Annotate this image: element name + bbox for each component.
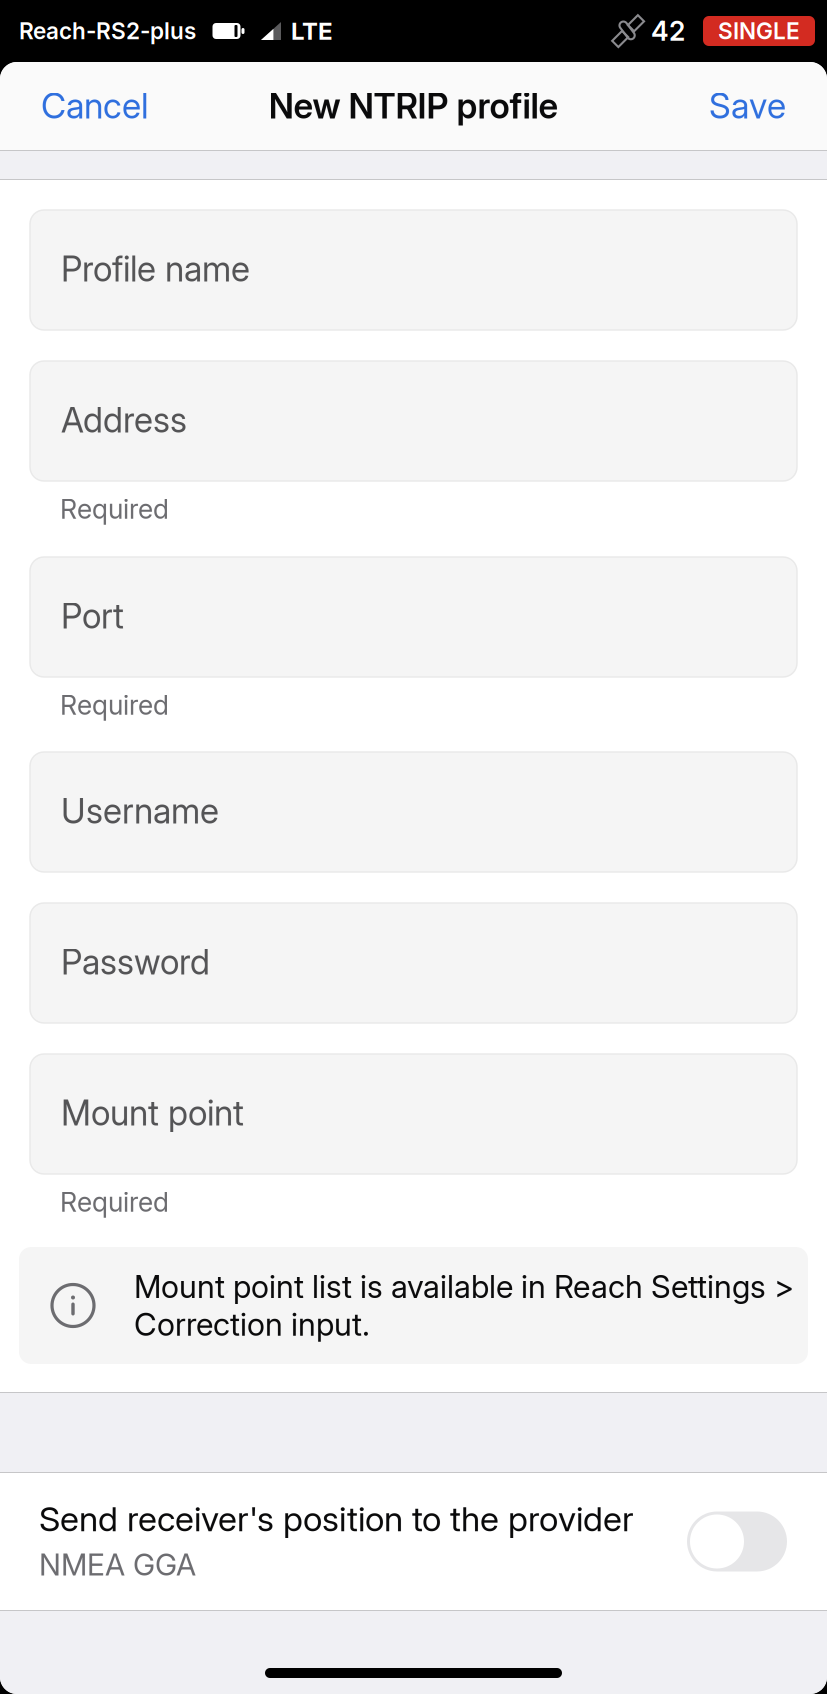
button[interactable]: Save	[709, 85, 786, 127]
staticText: 42	[651, 15, 685, 47]
staticText: Username	[61, 790, 219, 832]
staticText: NMEA GGA	[39, 1547, 196, 1583]
button[interactable]: Username	[30, 752, 797, 872]
staticText: Reach-RS2-plus	[19, 17, 196, 45]
button[interactable]: Password	[30, 903, 797, 1023]
staticText: Profile name	[61, 248, 250, 290]
button[interactable]: Cancel	[41, 85, 149, 127]
staticText: Address	[61, 399, 187, 441]
button[interactable]: Send receiver's position to the provider	[0, 1473, 827, 1610]
staticText: Save	[709, 85, 786, 127]
staticText: New NTRIP profile	[268, 85, 558, 127]
staticText: Mount point list is available in Reach S…	[134, 1268, 794, 1343]
staticText: Password	[61, 941, 210, 983]
staticText: LTE	[291, 16, 333, 45]
button[interactable]: Port	[30, 557, 797, 677]
button[interactable]: Address	[30, 361, 797, 481]
staticText: Send receiver's position to the provider	[39, 1498, 634, 1540]
staticText: SINGLE	[718, 17, 800, 45]
button[interactable]: Profile name	[30, 210, 797, 330]
staticText: Required	[60, 689, 169, 721]
button[interactable]: Mount point	[30, 1054, 797, 1174]
staticText: Port	[61, 595, 124, 637]
staticText: Mount point	[61, 1092, 244, 1134]
staticText: Cancel	[41, 85, 149, 127]
staticText: Required	[60, 493, 169, 525]
staticText: Required	[60, 1186, 169, 1218]
